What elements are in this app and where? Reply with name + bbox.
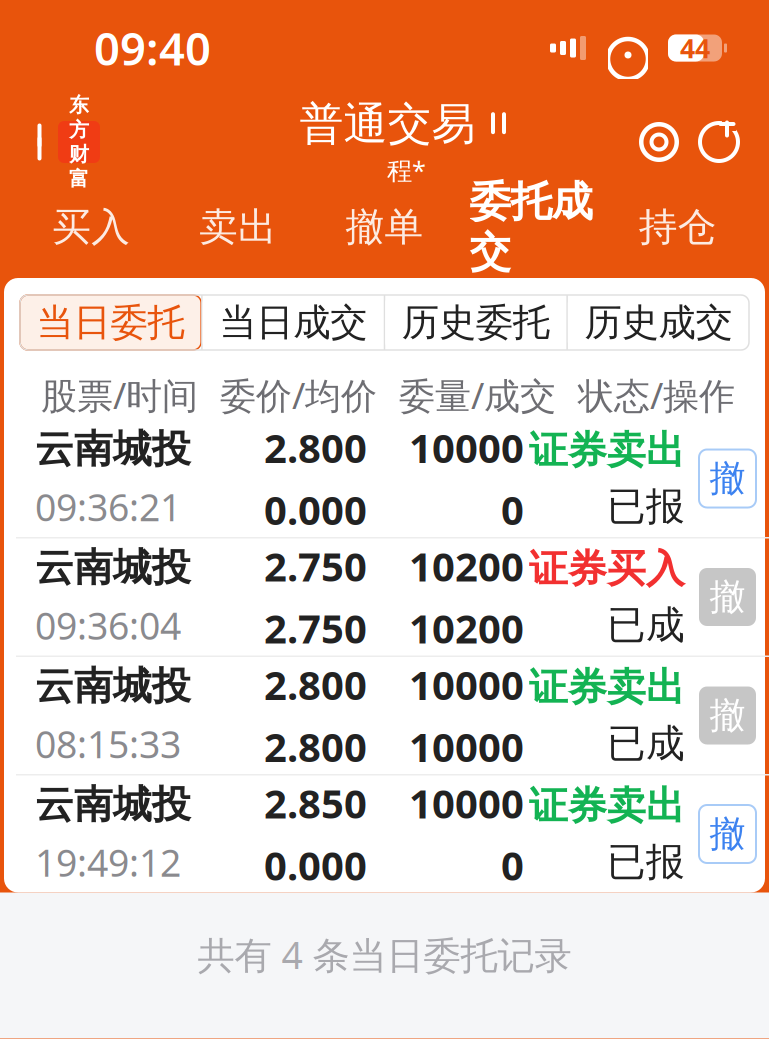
staticText: 10000: [409, 776, 524, 829]
button[interactable]: 历史委托: [385, 295, 566, 350]
staticText: 委量/成交: [399, 371, 556, 419]
staticText: 已成: [607, 720, 685, 767]
button[interactable]: 设置: [635, 118, 683, 166]
staticText: 0: [501, 483, 524, 536]
staticText: 卖出: [199, 203, 277, 251]
staticText: 0.000: [264, 483, 367, 536]
button[interactable]: 刷新: [695, 118, 743, 166]
staticText: 云南城投: [35, 425, 191, 473]
staticText: 状态/操作: [578, 371, 735, 419]
staticText: 10000: [409, 658, 524, 711]
staticText: 当日委托: [37, 300, 185, 345]
staticText: 证券卖出: [529, 782, 685, 829]
staticText: 普通交易: [299, 97, 475, 151]
button[interactable]: 撤单: [311, 188, 458, 278]
staticText: 09:36:21: [35, 482, 181, 532]
staticText: 持仓: [639, 203, 717, 251]
button[interactable]: 持仓: [604, 188, 751, 278]
staticText: 证券卖出: [529, 663, 685, 711]
button[interactable]: 返回 东方财富: [22, 110, 100, 174]
staticText: 历史委托: [402, 300, 550, 345]
staticText: 44: [680, 30, 710, 66]
staticText: 撤: [709, 456, 745, 501]
staticText: 2.800: [264, 720, 367, 773]
button[interactable]: 撤单: [699, 805, 756, 863]
button[interactable]: 撤单: [699, 449, 756, 507]
button[interactable]: 当日委托: [20, 295, 201, 350]
staticText: 0.000: [264, 838, 367, 892]
staticText: 09:36:04: [35, 600, 181, 650]
staticText: 撤: [709, 693, 745, 738]
staticText: 买入: [52, 203, 130, 251]
staticText: 19:49:12: [35, 837, 181, 887]
staticText: 历史成交: [584, 300, 732, 345]
button[interactable]: 卖出: [165, 188, 311, 278]
button[interactable]: 当日成交: [203, 295, 384, 350]
staticText: 已报: [607, 483, 685, 530]
staticText: 10000: [409, 720, 524, 773]
staticText: 委托成交: [470, 176, 593, 278]
staticText: 08:15:33: [35, 719, 181, 769]
staticText: 已报: [607, 838, 685, 886]
staticText: 证券买入: [529, 545, 685, 592]
button[interactable]: 撤单: [699, 568, 756, 626]
staticText: 0: [501, 838, 524, 892]
staticText: 云南城投: [35, 781, 191, 828]
staticText: 云南城投: [35, 544, 191, 591]
staticText: 东方: [69, 93, 89, 142]
staticText: 09:40: [94, 18, 211, 78]
button[interactable]: 买入: [18, 188, 165, 278]
staticText: 证券卖出: [529, 426, 685, 474]
staticText: 撤单: [345, 203, 423, 251]
staticText: 2.750: [264, 601, 367, 655]
staticText: 财富: [69, 142, 89, 191]
button[interactable]: 委托成交: [458, 188, 604, 278]
staticText: 共有 4 条当日委托记录: [197, 930, 571, 979]
staticText: 当日成交: [219, 300, 367, 345]
staticText: 撤: [709, 575, 745, 619]
staticText: 10200: [409, 601, 524, 655]
staticText: 10200: [409, 539, 524, 592]
staticText: 撤: [709, 812, 745, 856]
staticText: 2.800: [264, 658, 367, 711]
staticText: 2.850: [264, 776, 367, 829]
staticText: 程*: [387, 153, 426, 187]
staticText: 已成: [607, 601, 685, 649]
staticText: 2.750: [264, 539, 367, 592]
staticText: 10000: [409, 421, 524, 474]
staticText: 2.800: [264, 421, 367, 474]
staticText: 云南城投: [35, 662, 191, 710]
staticText: 股票/时间: [41, 371, 198, 419]
button[interactable]: 历史成交: [568, 295, 749, 350]
staticText: 委价/均价: [220, 371, 377, 419]
button[interactable]: 撤单: [699, 686, 756, 744]
